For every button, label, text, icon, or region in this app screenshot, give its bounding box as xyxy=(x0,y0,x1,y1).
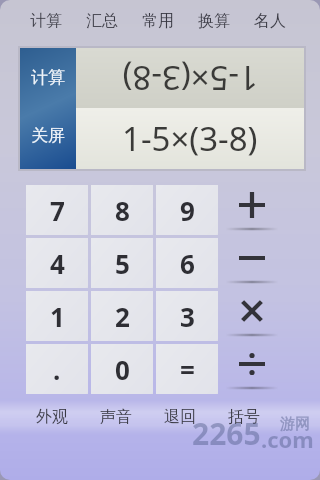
staticText: 括号 xyxy=(228,407,260,427)
staticText: 1-5×(3-8) xyxy=(122,56,258,101)
button[interactable]: 0 xyxy=(91,344,153,394)
staticText: 退回 xyxy=(164,407,196,427)
staticText: 0 xyxy=(115,352,130,387)
staticText: 8 xyxy=(115,193,130,228)
staticText: 9 xyxy=(180,193,195,228)
button[interactable]: 计算 xyxy=(20,48,76,106)
button[interactable]: 换算 xyxy=(186,6,242,36)
staticText: 7 xyxy=(50,193,65,228)
staticText: 外观 xyxy=(36,407,68,427)
staticText: 6 xyxy=(180,246,195,281)
button[interactable]: 1 xyxy=(26,291,88,341)
button[interactable]: 关屏 xyxy=(20,106,76,165)
button[interactable]: 8 xyxy=(91,185,153,235)
staticText: 关屏 xyxy=(31,125,65,146)
staticText: 声音 xyxy=(100,407,132,427)
staticText: 名人 xyxy=(254,11,286,31)
button[interactable]: 3 xyxy=(156,291,218,341)
staticText: 计算 xyxy=(31,67,65,88)
staticText: .com xyxy=(261,424,314,454)
button[interactable]: = xyxy=(156,344,218,394)
staticText: 1 xyxy=(50,299,65,334)
button[interactable]: 外观 xyxy=(22,402,82,432)
button[interactable]: 9 xyxy=(156,185,218,235)
staticText: 汇总 xyxy=(86,11,118,31)
button[interactable]: Plus xyxy=(224,185,280,235)
staticText: . xyxy=(53,352,61,387)
button[interactable]: 名人 xyxy=(242,6,298,36)
button[interactable]: 6 xyxy=(156,238,218,288)
button[interactable]: 4 xyxy=(26,238,88,288)
button[interactable]: 常用 xyxy=(130,6,186,36)
staticText: 2265 xyxy=(192,413,261,454)
staticText: 游网 xyxy=(280,415,310,434)
staticText: 计算 xyxy=(30,11,62,31)
button[interactable]: 2 xyxy=(91,291,153,341)
staticText: 1-5×(3-8) xyxy=(122,116,258,161)
staticText: 常用 xyxy=(142,11,174,31)
button[interactable]: 退回 xyxy=(150,402,210,432)
staticText: = xyxy=(180,352,195,387)
button[interactable]: 汇总 xyxy=(74,6,130,36)
button[interactable]: 5 xyxy=(91,238,153,288)
staticText: 3 xyxy=(180,299,195,334)
button[interactable]: 声音 xyxy=(86,402,146,432)
button[interactable]: 7 xyxy=(26,185,88,235)
staticText: 5 xyxy=(115,246,130,281)
button[interactable]: 括号 xyxy=(214,402,274,432)
button[interactable]: Divide xyxy=(224,344,280,394)
button[interactable]: . xyxy=(26,344,88,394)
staticText: 换算 xyxy=(198,11,230,31)
staticText: 4 xyxy=(50,246,65,281)
button[interactable]: Minus xyxy=(224,238,280,288)
button[interactable]: 计算 xyxy=(18,6,74,36)
staticText: 2 xyxy=(115,299,130,334)
button[interactable]: Multiply xyxy=(224,291,280,341)
